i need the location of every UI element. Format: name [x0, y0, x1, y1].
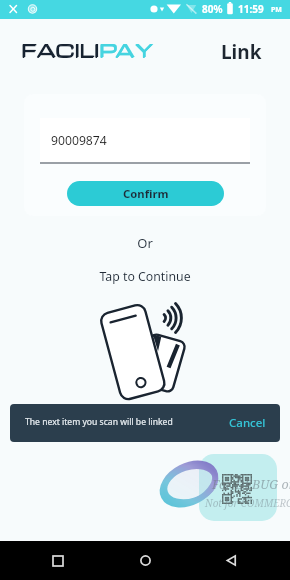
button[interactable]: Confirm: [67, 181, 224, 206]
other: Tap phone to card: [90, 296, 200, 408]
staticText: FACILI: [21, 36, 99, 62]
staticText: 11:59: [238, 2, 264, 16]
button[interactable]: Cancel: [215, 407, 280, 439]
staticText: For DEBUG only: [212, 476, 290, 493]
staticText: PAY: [100, 36, 155, 62]
button[interactable]: Back: [216, 541, 246, 580]
staticText: The next item you scan will be linked: [25, 416, 173, 428]
staticText: PAY: [99, 37, 154, 63]
staticText: Cancel: [229, 415, 266, 431]
staticText: FACILI: [21, 37, 99, 63]
button[interactable]: 90009874: [40, 118, 250, 162]
staticText: PAY: [99, 36, 154, 62]
staticText: Not for COMMERCIAL: [205, 496, 290, 510]
staticText: 80%: [202, 2, 223, 16]
button[interactable]: Home: [130, 541, 160, 580]
staticText: Tap to Continue: [0, 268, 290, 285]
button[interactable]: Recent apps: [43, 541, 73, 580]
staticText: FACILI: [22, 36, 100, 62]
staticText: Confirm: [123, 186, 169, 201]
staticText: Link: [221, 39, 262, 65]
staticText: Or: [0, 234, 290, 252]
staticText: 90009874: [51, 132, 107, 149]
staticText: PM: [271, 5, 282, 15]
